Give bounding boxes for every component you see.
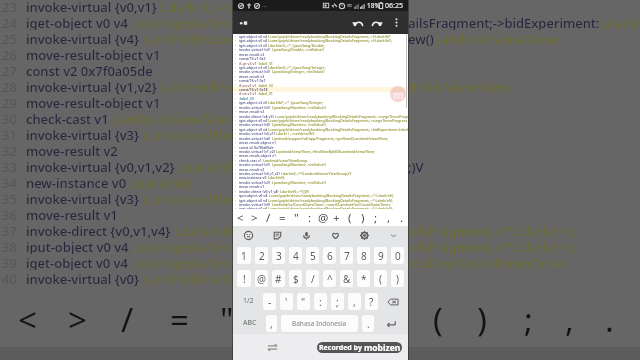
staticText: / [121,297,134,342]
button[interactable]: . [362,315,374,332]
staticText: const/16 v1 0x1 [239,78,266,83]
button[interactable]: / [261,209,275,226]
staticText: invoke-virtual {v3} [26,126,143,142]
button[interactable]: sticker [263,226,292,244]
button[interactable]: settings [350,226,379,244]
button[interactable]: @ [317,209,330,226]
button[interactable]: ; [331,293,344,310]
staticText: iget-object v0 v4 [239,127,268,132]
button[interactable]: More options [389,15,404,30]
button[interactable]: = [275,209,289,226]
staticText: " [220,297,234,342]
button[interactable]: ) [356,209,369,226]
staticText: Ldark/ [600,14,640,30]
button[interactable]: : [314,293,327,310]
staticText: 18% [367,1,380,10]
staticText: 33 [2,158,17,174]
staticText: invoke-virtual {v3} [239,180,272,185]
button[interactable]: / [306,270,319,287]
button[interactable]: 9 [374,247,387,264]
button[interactable]: 1 [237,247,251,264]
staticText: 7 [344,249,350,263]
button[interactable]: ^ [323,270,336,287]
button[interactable]: < [233,209,247,226]
button[interactable]: " [297,293,310,310]
button[interactable]: 0 [391,247,404,264]
staticText: @ [257,272,266,286]
staticText: > [68,297,87,342]
staticText: ailsFragment;->bidExperiment: [408,14,600,30]
button[interactable]: 2 [255,247,268,264]
button[interactable]: Switch keyboard [265,340,279,354]
staticText: > [251,210,258,226]
button[interactable]: ( [343,209,356,226]
staticText: move-result-object v1 [239,140,276,145]
button[interactable]: Redo [369,14,386,31]
button[interactable]: > [247,209,261,226]
button[interactable]: ( [374,270,387,287]
button[interactable]: ' [280,293,293,310]
button[interactable]: mic [292,226,321,244]
button[interactable]: ? [365,293,378,310]
staticText: const/16 v1 0x18 [239,87,268,92]
button[interactable]: , [266,315,277,332]
staticText: < [18,297,37,342]
staticText: 32 [2,142,17,158]
button[interactable]: 5 [306,247,319,264]
staticText: Lcom/gojek/driver/readybooking/BookingDe… [268,38,392,43]
button[interactable]: chev [379,226,408,244]
staticText: 30 [2,110,17,126]
staticText: Ljava/lang/Nur [143,126,237,142]
staticText: Lcom/gojek/driver/readybooking/BookingDe… [275,114,408,119]
button[interactable]: ! [237,270,251,287]
staticText: : [308,210,312,226]
button[interactable]: ABC [236,312,263,334]
button[interactable]: # [272,270,285,287]
button[interactable]: ; [369,209,382,226]
staticText: 38 [2,238,17,254]
staticText: invoke-virtual {v3} [239,47,272,52]
staticText: ! [243,272,246,286]
button[interactable]: 6 [323,247,336,264]
button[interactable]: 8 [357,247,370,264]
staticText: ? [369,295,374,309]
button[interactable]: " [289,209,303,226]
staticText: iget-object v0 v4 [239,38,268,43]
staticText: :label_33 [258,83,273,88]
button[interactable]: : [303,209,317,226]
button[interactable]: Undo [349,14,366,31]
button[interactable]: 1/2 [236,290,260,312]
staticText: invoke-virtual {v0,v1} [239,131,276,136]
button[interactable]: Bahasa Indonesia [281,315,358,332]
button[interactable]: . [395,209,408,226]
button[interactable]: + [330,209,343,226]
button[interactable]: 4 [289,247,302,264]
button[interactable]: , [348,293,361,310]
button[interactable]: ) [391,270,404,287]
button[interactable]: @ [255,270,268,287]
staticText: :label_31 [258,61,273,66]
staticText: invoke-virtual {v0,v1,v2} [26,158,178,174]
button[interactable]: Enter [378,315,404,332]
button[interactable]: emoji [233,226,263,244]
staticText: Ljava/lang/Number;->intValue() [272,162,326,167]
staticText: Landroid/os/Cc [143,270,238,286]
button[interactable]: * [357,270,370,287]
button[interactable]: & [340,270,353,287]
staticText: if-ne v3 v1 [239,91,258,96]
button[interactable]: 3 [272,247,285,264]
staticText: move-result-object v1 [26,94,161,110]
button[interactable]: - [263,293,276,310]
staticText: Lcom/gojek/driv [132,238,234,254]
staticText: move-result v2 [26,142,118,158]
button[interactable]: , [382,209,395,226]
button[interactable]: $ [289,270,302,287]
staticText: & [343,272,351,286]
staticText: iget-object v3 v0 [239,65,268,70]
button[interactable]: Backspace [382,293,404,310]
staticText: 39 [2,254,17,270]
button[interactable]: App icon [236,15,252,31]
button[interactable]: heart [321,226,350,244]
staticText: = [170,297,189,342]
button[interactable]: 7 [340,247,353,264]
